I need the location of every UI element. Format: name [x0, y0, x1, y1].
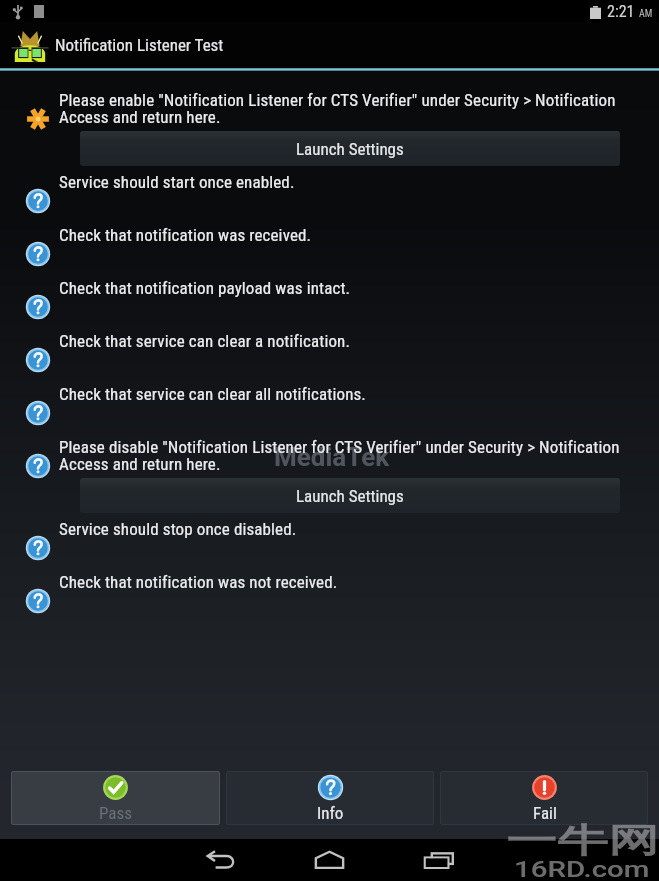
button[interactable]: Check that notification was not received…	[0, 567, 659, 620]
staticText: AM	[639, 8, 653, 20]
staticText: Fail	[533, 803, 557, 823]
staticText: Info	[317, 803, 344, 823]
staticText: Launch Settings	[296, 139, 404, 159]
staticText: Check that service can clear a notificat…	[59, 331, 351, 351]
staticText: Check that notification payload was inta…	[59, 278, 351, 298]
button[interactable]: Please disable "Notification Listener fo…	[0, 432, 659, 514]
button[interactable]: Service should stop once disabled.	[0, 514, 659, 567]
button[interactable]: Please enable "Notification Listener for…	[0, 85, 659, 167]
staticText: 16RD.com	[514, 857, 650, 881]
button[interactable]: Service should start once enabled.	[0, 167, 659, 220]
button[interactable]: Info	[226, 771, 434, 825]
other: USB connected	[13, 4, 23, 19]
staticText: Pass	[99, 803, 132, 823]
button[interactable]: Pass	[11, 771, 220, 825]
staticText: Please disable "Notification Listener fo…	[59, 437, 637, 474]
staticText: Please enable "Notification Listener for…	[59, 90, 637, 127]
staticText: Service should start once enabled.	[59, 172, 295, 192]
button[interactable]: Home	[275, 839, 384, 881]
button[interactable]: Check that service can clear all notific…	[0, 379, 659, 432]
button[interactable]: Back	[166, 839, 275, 881]
button[interactable]: Recent apps	[384, 839, 493, 881]
staticText: Check that notification was received.	[59, 225, 312, 245]
staticText: Launch Settings	[296, 486, 404, 506]
staticText: Check that notification was not received…	[59, 572, 338, 592]
staticText: 一牛网	[506, 820, 659, 862]
button[interactable]: Launch Settings	[80, 478, 620, 513]
button[interactable]: Launch Settings	[80, 131, 620, 166]
staticText: Check that service can clear all notific…	[59, 384, 366, 404]
button[interactable]: Check that notification payload was inta…	[0, 273, 659, 326]
staticText: Service should stop once disabled.	[59, 519, 297, 539]
staticText: Notification Listener Test	[55, 35, 224, 55]
staticText: MediaTek	[274, 442, 390, 472]
button[interactable]: Check that notification was received.	[0, 220, 659, 273]
staticText: 2:21	[607, 2, 635, 21]
button[interactable]: Check that service can clear a notificat…	[0, 326, 659, 379]
button[interactable]: Fail	[440, 771, 648, 825]
